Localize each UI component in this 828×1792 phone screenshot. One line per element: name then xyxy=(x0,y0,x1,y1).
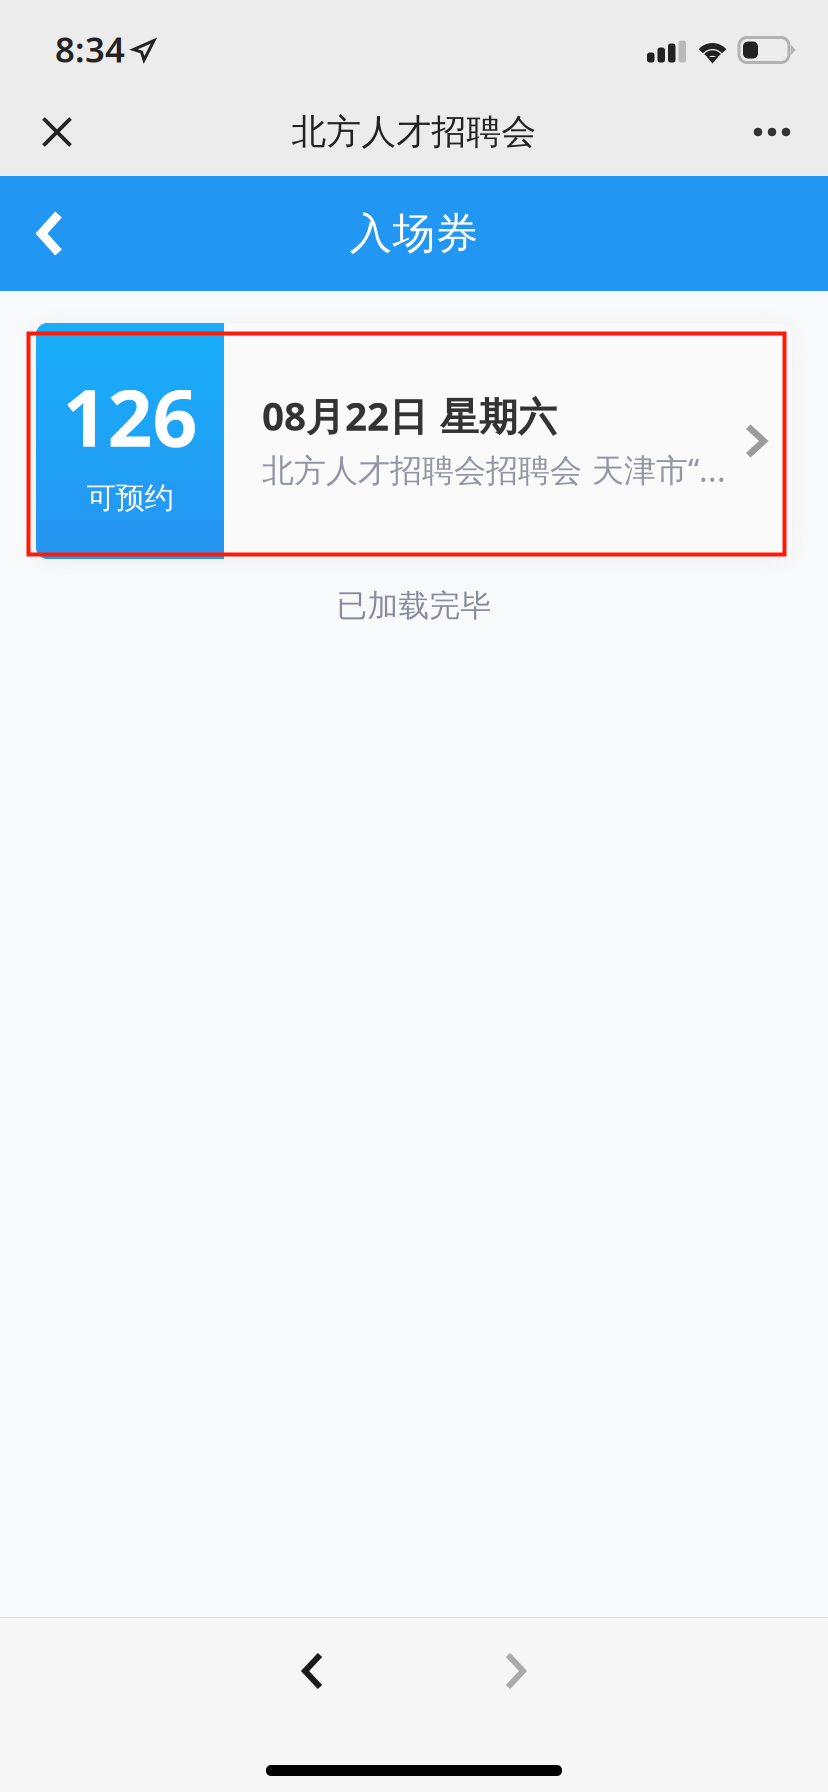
staticText: 已加载完毕 xyxy=(336,587,491,625)
staticText: 入场券 xyxy=(349,207,478,260)
button[interactable]: Close xyxy=(14,89,100,175)
button[interactable]: Back xyxy=(15,195,85,271)
button[interactable]: More options xyxy=(729,89,815,175)
staticText: 8:34 xyxy=(55,26,125,72)
button[interactable]: Back xyxy=(257,1618,367,1721)
staticText: 可预约 xyxy=(86,480,173,516)
staticText: 北方人才招聘会招聘会 天津市“... xyxy=(262,448,726,491)
staticText: 北方人才招聘会 xyxy=(291,111,536,153)
staticText: 08月22日 星期六 xyxy=(262,390,557,441)
button[interactable]: 126 xyxy=(36,323,792,559)
button[interactable]: Forward xyxy=(460,1618,570,1721)
staticText: 126 xyxy=(62,364,197,468)
